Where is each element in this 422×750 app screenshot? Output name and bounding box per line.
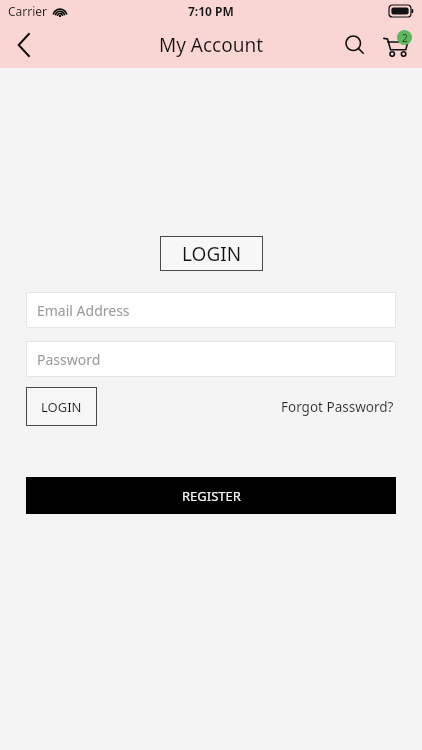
staticText: Password (37, 350, 101, 369)
button[interactable]: Password (26, 341, 396, 377)
staticText: Forgot Password? (281, 398, 394, 416)
button[interactable]: REGISTER (26, 477, 396, 514)
button[interactable]: Back (0, 22, 48, 68)
button[interactable]: LOGIN (26, 387, 97, 426)
staticText: LOGIN (182, 241, 242, 267)
staticText: 7:10 PM (188, 3, 234, 19)
button[interactable]: LOGIN (160, 236, 263, 271)
button[interactable]: Cart, 2 items (376, 24, 418, 66)
button[interactable]: Forgot Password? (279, 392, 396, 422)
staticText: REGISTER (182, 487, 241, 505)
button[interactable]: Search (334, 24, 376, 66)
button[interactable]: Email Address (26, 292, 396, 328)
staticText: Email Address (37, 301, 130, 320)
staticText: Carrier (8, 3, 48, 19)
staticText: My Account (159, 32, 264, 58)
staticText: 2 (402, 31, 408, 45)
staticText: LOGIN (41, 398, 82, 416)
